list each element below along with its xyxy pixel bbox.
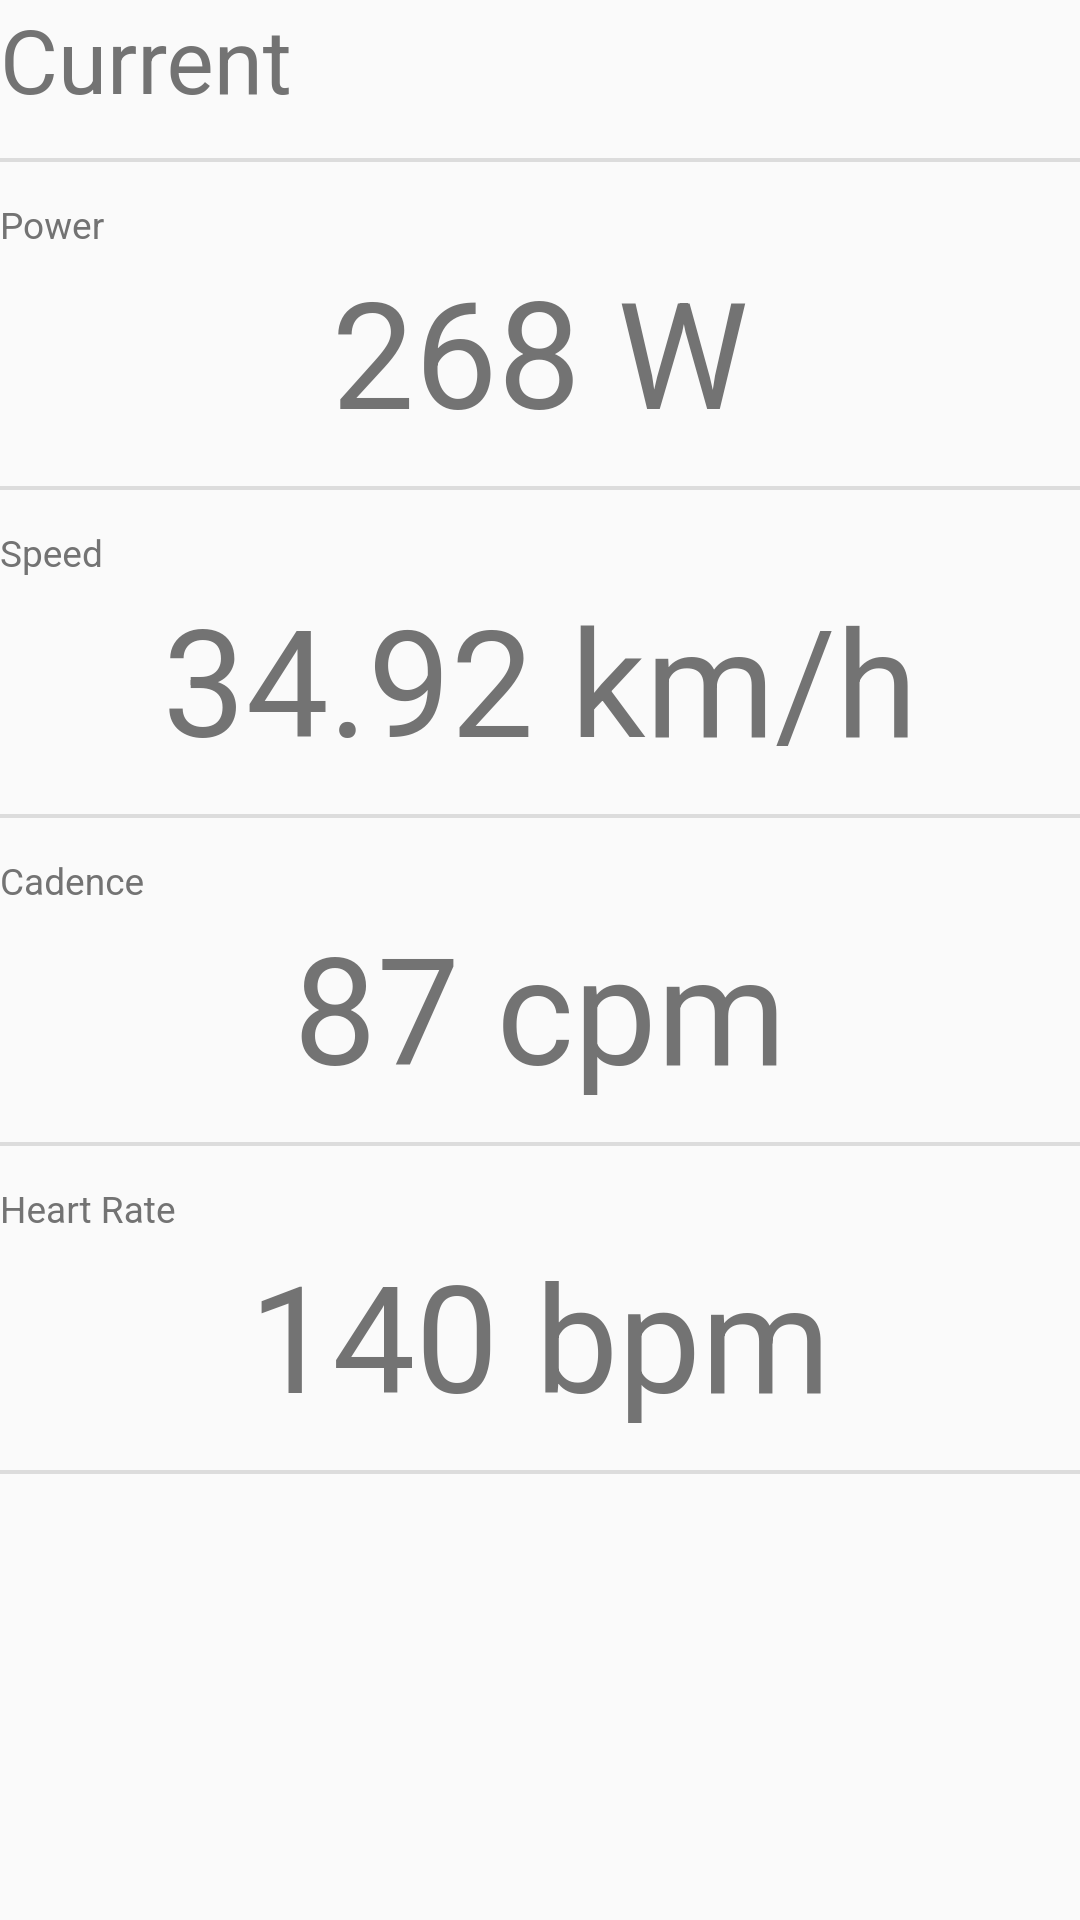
staticText: 268 W xyxy=(0,272,1080,445)
staticText: Power xyxy=(0,205,105,248)
staticText: Speed xyxy=(0,533,103,576)
button[interactable]: Heart Rate 140 bpm xyxy=(0,1146,1080,1470)
button[interactable]: Power 268 W xyxy=(0,162,1080,486)
button[interactable]: Speed 34.92 km/h xyxy=(0,490,1080,814)
button[interactable]: Current xyxy=(0,0,1080,158)
staticText: 34.92 km/h xyxy=(0,600,1080,773)
staticText: Current xyxy=(0,11,292,115)
staticText: 140 bpm xyxy=(0,1256,1080,1429)
button[interactable]: Cadence 87 cpm xyxy=(0,818,1080,1142)
staticText: Cadence xyxy=(0,861,145,904)
staticText: Heart Rate xyxy=(0,1189,176,1232)
staticText: 87 cpm xyxy=(0,928,1080,1101)
